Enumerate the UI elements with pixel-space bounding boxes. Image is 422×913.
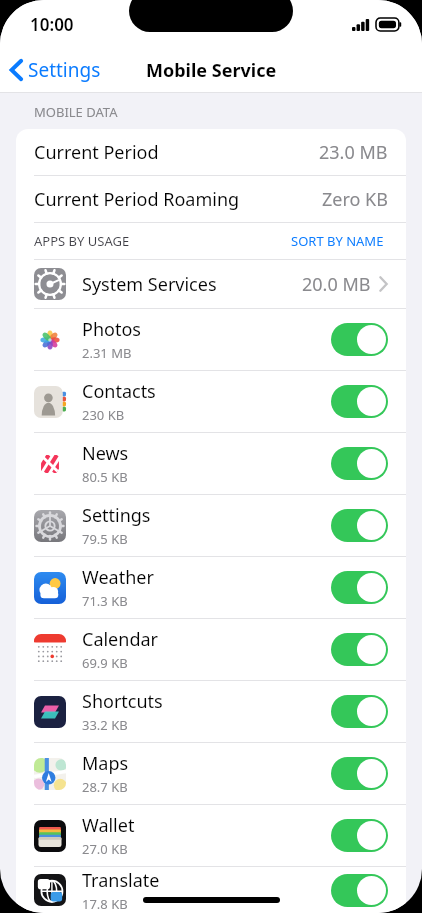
staticText: Zero KB: [322, 187, 388, 212]
button[interactable]: Weather: [16, 557, 406, 618]
staticText: 20.0 MB: [302, 272, 371, 297]
button[interactable]: Shortcuts: [16, 681, 406, 742]
staticText: APPS BY USAGE: [34, 232, 130, 250]
button[interactable]: Toggle mobile data: [331, 447, 388, 480]
staticText: Contacts: [82, 379, 156, 404]
button[interactable]: Toggle mobile data: [331, 571, 388, 604]
button[interactable]: Wallet: [16, 805, 406, 866]
staticText: 17.8 KB: [82, 895, 128, 913]
staticText: Current Period: [34, 140, 159, 165]
staticText: 2.31 MB: [82, 344, 132, 362]
button[interactable]: Contacts: [16, 371, 406, 432]
button[interactable]: System Services: [16, 260, 406, 308]
staticText: 10:00: [30, 13, 74, 36]
staticText: System Services: [82, 272, 217, 297]
staticText: MOBILE DATA: [34, 103, 118, 121]
button[interactable]: Toggle mobile data: [331, 819, 388, 852]
button[interactable]: Toggle mobile data: [331, 874, 388, 907]
staticText: Weather: [82, 565, 154, 590]
staticText: SORT BY NAME: [291, 232, 384, 250]
staticText: Shortcuts: [82, 689, 163, 714]
button[interactable]: SORT BY NAME: [287, 228, 388, 254]
staticText: Mobile Service: [146, 58, 277, 83]
staticText: Translate: [82, 868, 160, 893]
staticText: 27.0 KB: [82, 840, 128, 858]
staticText: 230 KB: [82, 406, 125, 424]
staticText: Photos: [82, 317, 141, 342]
button[interactable]: Toggle mobile data: [331, 695, 388, 728]
button[interactable]: Translate: [16, 867, 406, 913]
staticText: Settings: [82, 503, 151, 528]
staticText: 23.0 MB: [319, 140, 388, 165]
button[interactable]: Maps: [16, 743, 406, 804]
staticText: Current Period Roaming: [34, 187, 240, 212]
staticText: 28.7 KB: [82, 778, 128, 796]
button[interactable]: Toggle mobile data: [331, 757, 388, 790]
staticText: 33.2 KB: [82, 716, 128, 734]
button[interactable]: Settings: [16, 495, 406, 556]
staticText: Calendar: [82, 627, 158, 652]
staticText: Maps: [82, 751, 129, 776]
button[interactable]: Toggle mobile data: [331, 385, 388, 418]
staticText: News: [82, 441, 129, 466]
button[interactable]: Toggle mobile data: [331, 323, 388, 356]
button[interactable]: Toggle mobile data: [331, 633, 388, 666]
staticText: 69.9 KB: [82, 654, 128, 672]
button[interactable]: Calendar: [16, 619, 406, 680]
staticText: Wallet: [82, 813, 135, 838]
staticText: Settings: [28, 57, 101, 83]
staticText: 79.5 KB: [82, 530, 128, 548]
button[interactable]: Current Period Roaming: [16, 176, 406, 222]
button[interactable]: Current Period: [16, 129, 406, 175]
button[interactable]: Settings: [0, 51, 111, 89]
button[interactable]: Photos: [16, 309, 406, 370]
staticText: 71.3 KB: [82, 592, 128, 610]
button[interactable]: Toggle mobile data: [331, 509, 388, 542]
button[interactable]: News: [16, 433, 406, 494]
staticText: 80.5 KB: [82, 468, 128, 486]
